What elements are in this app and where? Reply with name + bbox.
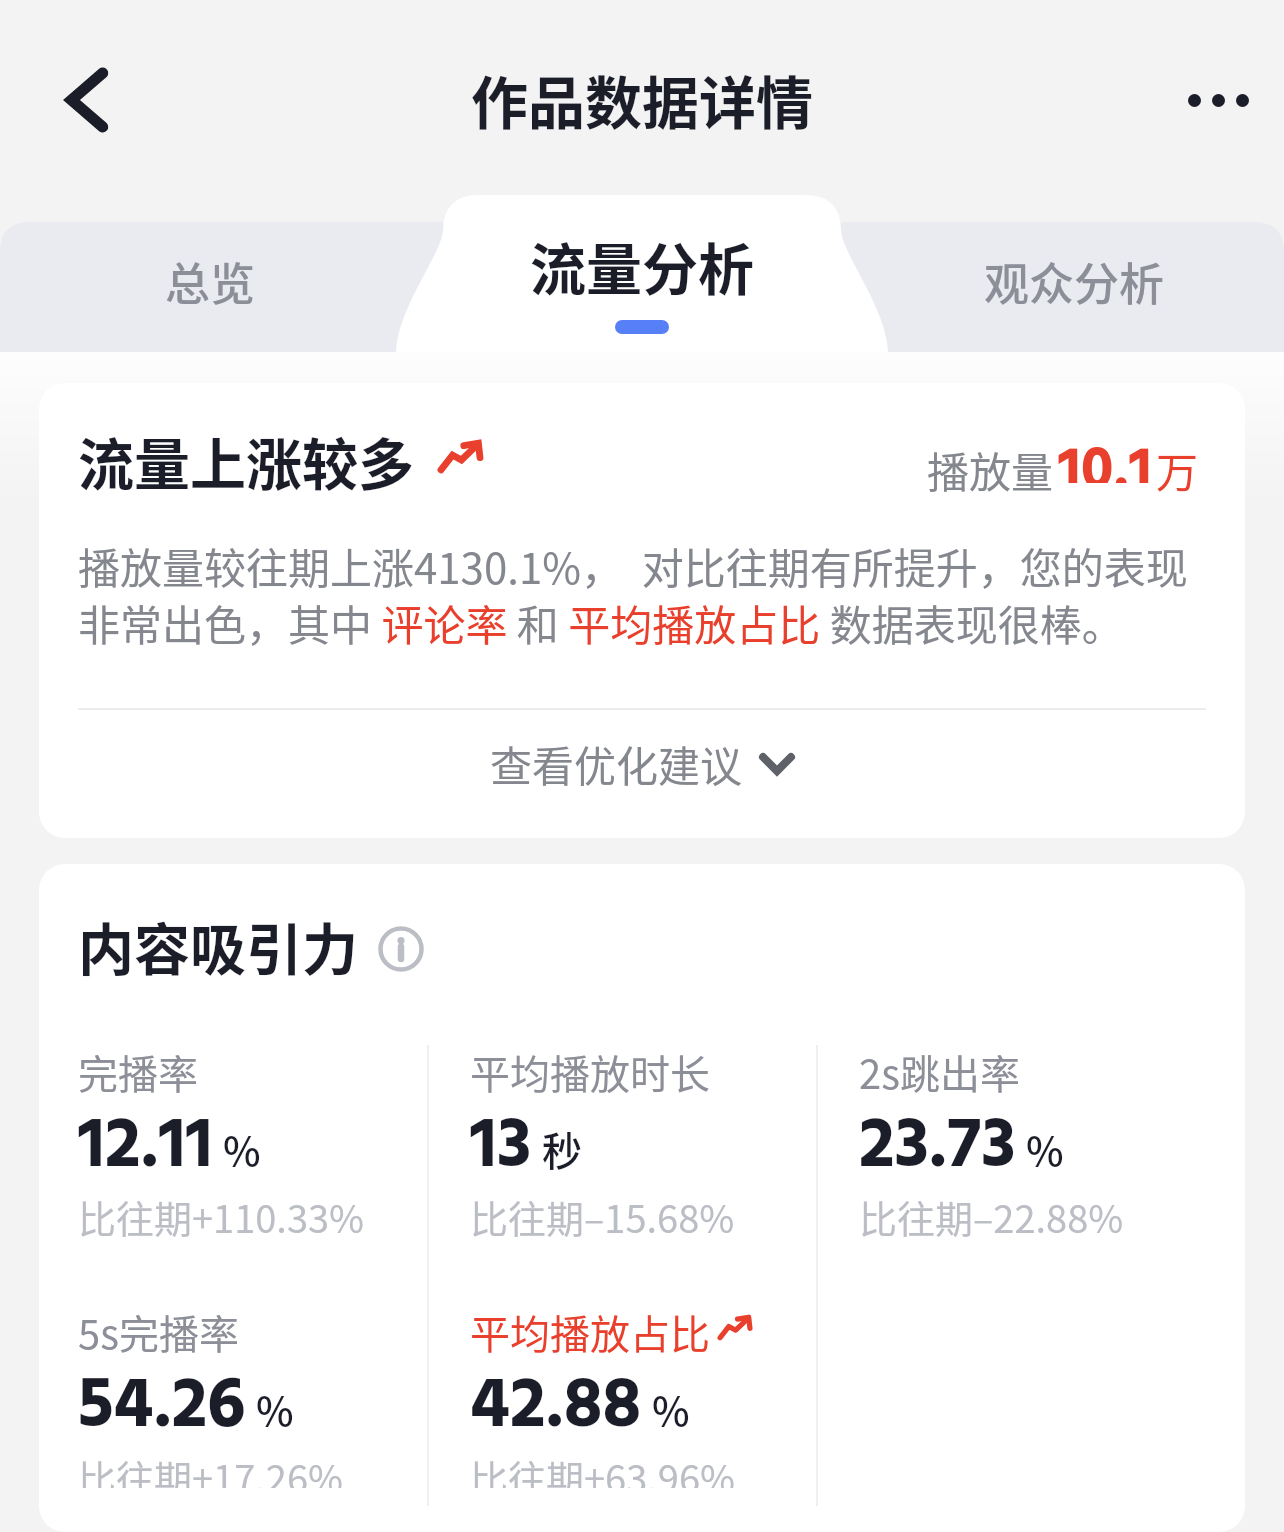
staticText: 总览 [165, 249, 256, 314]
staticText: % [223, 1120, 261, 1178]
button[interactable]: 流量分析 [432, 195, 852, 352]
staticText: 完播率 [78, 1043, 198, 1101]
staticText: 2s跳出率 [859, 1043, 1020, 1101]
staticText: 比往期+17.26% [78, 1449, 344, 1488]
staticText: 比往期–15.68% [470, 1189, 735, 1244]
button[interactable]: Info [378, 926, 424, 972]
staticText: 播放量 [927, 439, 1054, 497]
button[interactable]: 观众分析 [864, 222, 1284, 352]
staticText: 查看优化建议 [490, 733, 743, 794]
staticText: 比往期+110.33% [78, 1189, 365, 1244]
staticText: 秒 [542, 1120, 582, 1178]
staticText: % [256, 1380, 294, 1438]
staticText: 内容吸引力 [78, 905, 358, 986]
staticText: 平均播放时长 [470, 1043, 710, 1101]
staticText: 23.73 [859, 1091, 1016, 1205]
staticText: 流量上涨较多 [78, 420, 414, 501]
staticText: 平均播放占比 [470, 1303, 710, 1361]
staticText: 播放量较往期上涨4130.1%， 对比往期有所提升，您的表现非常出色，其中 评论… [78, 535, 1206, 654]
staticText: 作品数据详情 [471, 58, 813, 141]
button[interactable]: 查看优化建议 [39, 710, 1245, 838]
staticText: 万 [1156, 439, 1199, 497]
staticText: 54.26 [78, 1351, 246, 1465]
staticText: 10.1 [1058, 425, 1152, 483]
staticText: % [1026, 1120, 1064, 1178]
staticText: 13 [470, 1091, 532, 1205]
staticText: % [652, 1380, 690, 1438]
staticText: 比往期–22.88% [859, 1189, 1124, 1244]
staticText: 12.11 [78, 1091, 213, 1205]
staticText: 比往期+63.96% [470, 1449, 736, 1488]
staticText: 观众分析 [984, 249, 1165, 314]
staticText: 流量分析 [530, 225, 754, 306]
button[interactable]: Back [42, 54, 134, 146]
staticText: 42.88 [470, 1351, 642, 1465]
button[interactable]: More options [1172, 54, 1264, 146]
button[interactable]: 总览 [0, 222, 420, 352]
staticText: 5s完播率 [78, 1303, 239, 1361]
